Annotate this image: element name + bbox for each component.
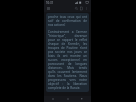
button[interactable]: Recent apps bbox=[77, 96, 87, 102]
staticText: 10:31 bbox=[46, 1, 54, 5]
button[interactable]: Back bbox=[48, 96, 58, 102]
button[interactable]: Home bbox=[63, 96, 73, 102]
staticText: Contrairement a l'armee "historique", de… bbox=[48, 30, 87, 90]
staticText: proche tous ceux qui ont soif de confirm… bbox=[48, 15, 87, 27]
button[interactable]: Search bbox=[74, 6, 79, 11]
button[interactable]: Menu bbox=[46, 6, 51, 11]
button[interactable]: proche tous ceux qui ont soif de confirm… bbox=[46, 13, 89, 92]
button[interactable]: Bookmark bbox=[79, 6, 84, 11]
button[interactable]: More options bbox=[84, 6, 89, 11]
